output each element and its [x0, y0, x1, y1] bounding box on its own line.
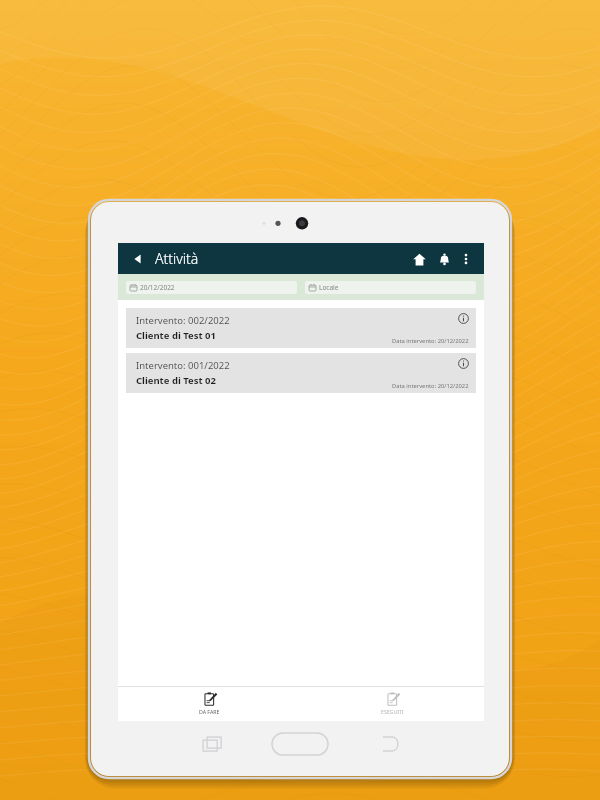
staticText: Intervento: 002/2022: [136, 314, 230, 327]
button[interactable]: Locale: [305, 281, 476, 294]
staticText: Cliente di Test 01: [136, 329, 216, 342]
staticText: Data intervento: 20/12/2022: [392, 382, 469, 390]
button[interactable]: Info: [456, 356, 470, 370]
button[interactable]: ESEGUITI: [301, 687, 484, 721]
staticText: Locale: [319, 283, 339, 292]
staticText: Cliente di Test 02: [136, 374, 216, 387]
staticText: Data intervento: 20/12/2022: [392, 337, 469, 345]
button[interactable]: 20/12/2022: [126, 281, 297, 294]
button[interactable]: Intervento: 001/2022: [126, 353, 476, 393]
button[interactable]: DA FARE: [118, 687, 301, 721]
staticText: 20/12/2022: [140, 283, 175, 292]
button[interactable]: Back: [128, 249, 148, 269]
staticText: DA FARE: [199, 708, 220, 715]
staticText: ESEGUITI: [381, 708, 404, 715]
staticText: Intervento: 001/2022: [136, 359, 230, 372]
button[interactable]: Intervento: 002/2022: [126, 308, 476, 348]
button[interactable]: More options: [456, 249, 476, 269]
staticText: Attività: [155, 249, 199, 268]
button[interactable]: Notifications: [433, 248, 455, 270]
button[interactable]: Home: [408, 248, 430, 270]
button[interactable]: Info: [456, 311, 470, 325]
